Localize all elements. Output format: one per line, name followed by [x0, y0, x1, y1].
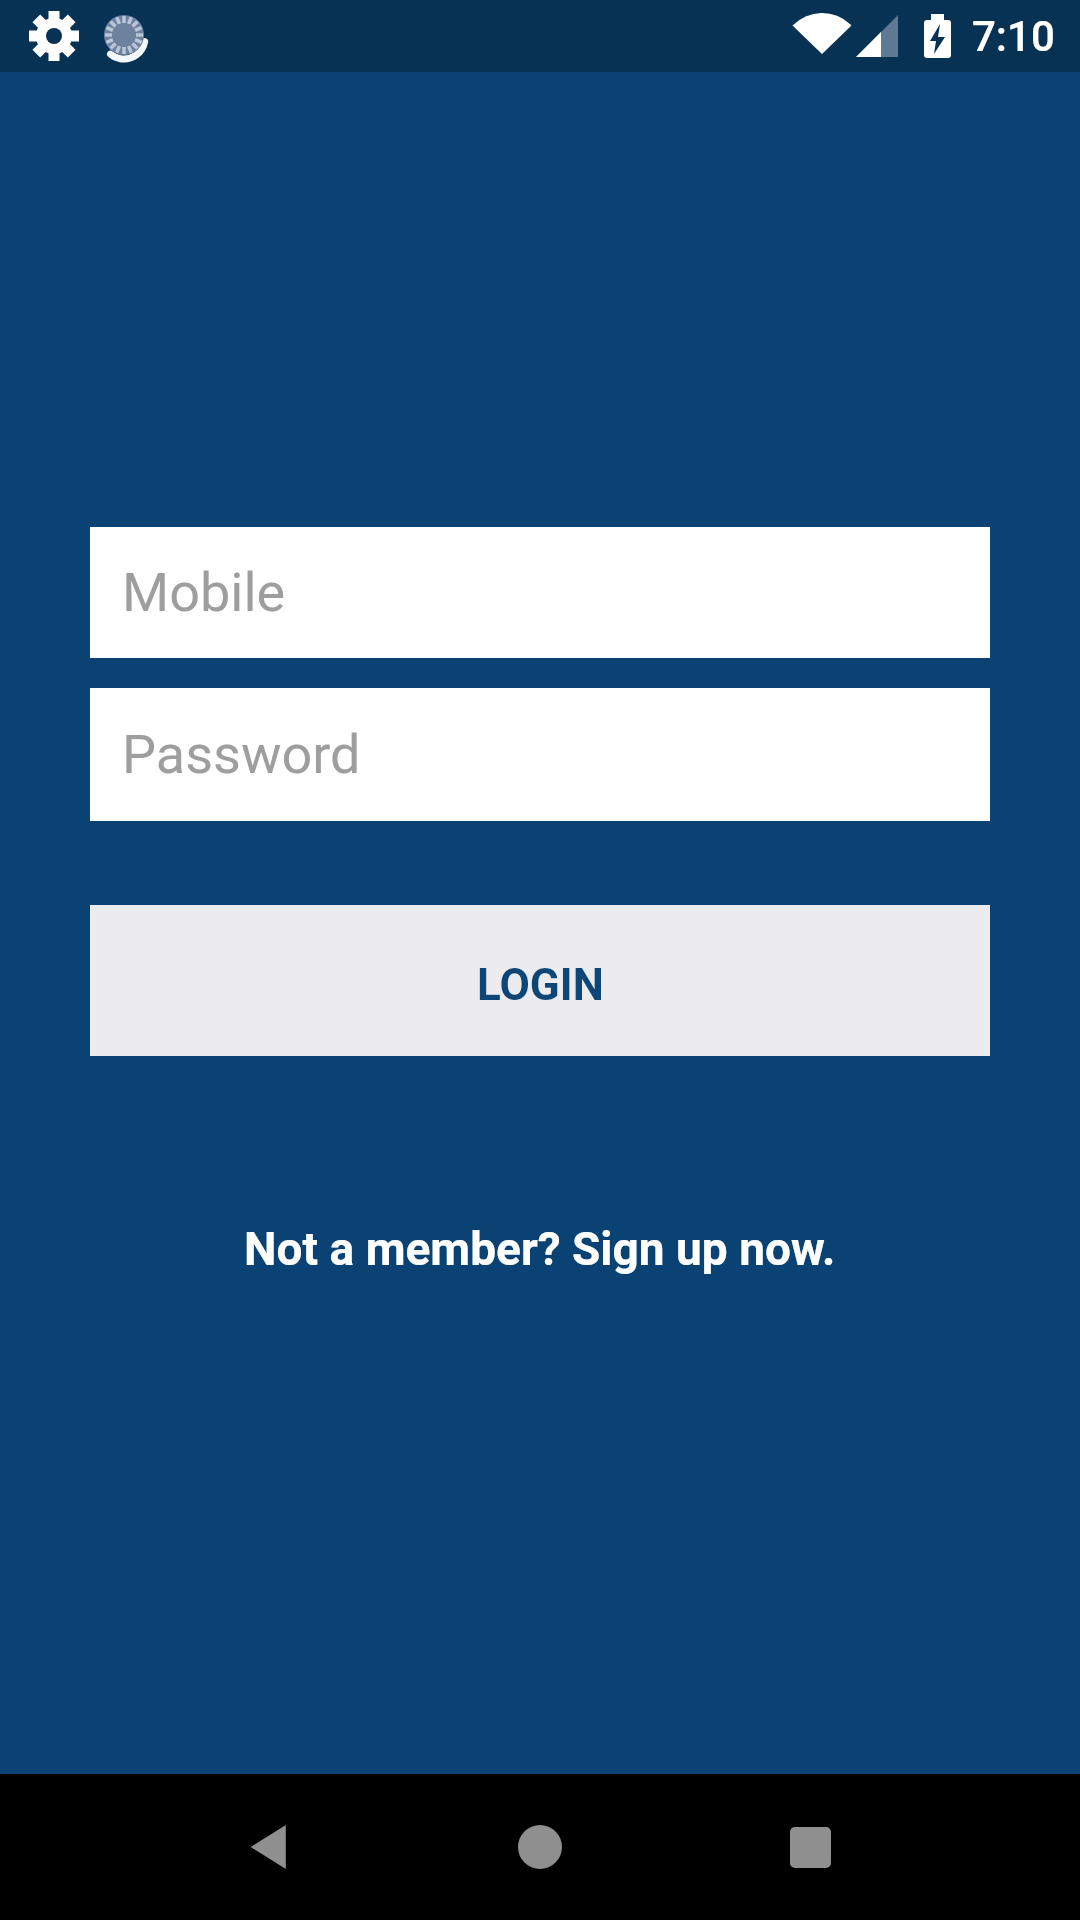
- button[interactable]: [467, 1774, 613, 1920]
- staticText: Not a member? Sign up now.: [244, 1222, 836, 1276]
- button[interactable]: [737, 1774, 883, 1920]
- button[interactable]: Not a member? Sign up now.: [0, 1222, 1080, 1276]
- button[interactable]: Mobile: [90, 527, 990, 658]
- staticText: Password: [122, 723, 361, 786]
- staticText: LOGIN: [477, 959, 604, 1011]
- staticText: Mobile: [122, 561, 286, 624]
- button[interactable]: Password: [90, 688, 990, 821]
- button[interactable]: [197, 1774, 343, 1920]
- staticText: 7:10: [972, 12, 1055, 61]
- button[interactable]: LOGIN: [90, 905, 990, 1056]
